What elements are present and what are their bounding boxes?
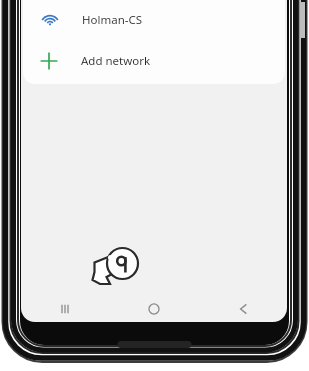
button[interactable]: Back: [198, 296, 287, 322]
button[interactable]: Holman-CS: [23, 0, 285, 40]
button[interactable]: Add network: [23, 40, 285, 82]
staticText: Add network: [81, 53, 151, 69]
button[interactable]: Home: [109, 296, 198, 322]
staticText: Holman-CS: [82, 12, 143, 28]
button[interactable]: Recent apps: [21, 296, 109, 322]
